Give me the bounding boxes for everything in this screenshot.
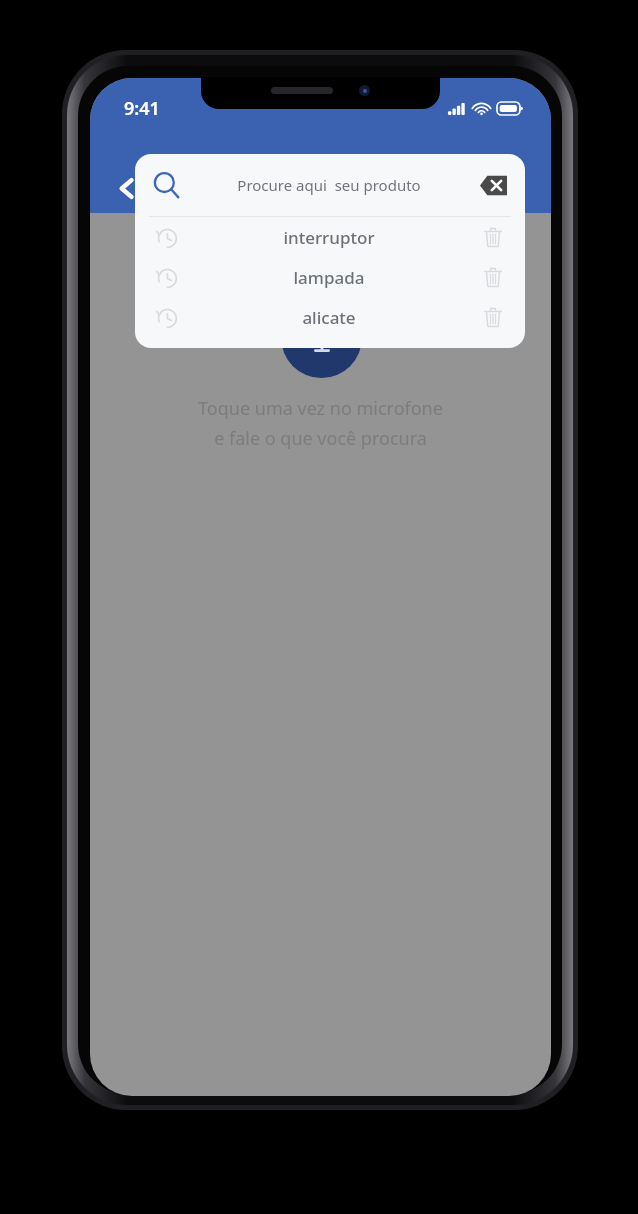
- button[interactable]: Microphone: [281, 297, 362, 378]
- button[interactable]: Delete interruptor: [461, 217, 525, 257]
- staticText: Procure aqui seu produto: [197, 175, 461, 195]
- button[interactable]: Delete alicate: [461, 297, 525, 337]
- staticText: alicate: [197, 306, 461, 329]
- button[interactable]: Back: [102, 164, 150, 212]
- button[interactable]: interruptor: [135, 217, 525, 257]
- button[interactable]: lampada: [135, 257, 525, 297]
- button[interactable]: Clear: [461, 154, 525, 216]
- staticText: interruptor: [197, 226, 461, 249]
- staticText: 9:41: [124, 96, 160, 121]
- staticText: Toque uma vez no microfone: [198, 396, 443, 421]
- staticText: e fale o que você procura: [214, 426, 427, 451]
- button[interactable]: Delete lampada: [461, 257, 525, 297]
- button[interactable]: alicate: [135, 297, 525, 337]
- button[interactable]: Procure aqui seu produto: [135, 154, 525, 216]
- staticText: lampada: [197, 266, 461, 289]
